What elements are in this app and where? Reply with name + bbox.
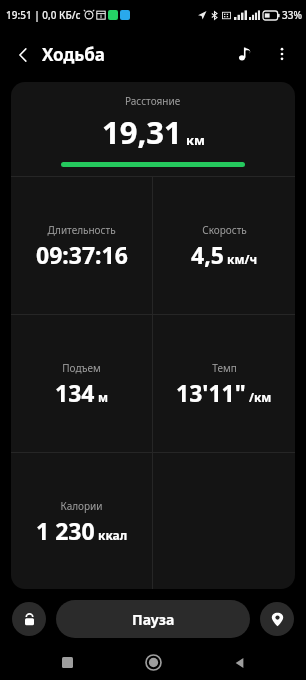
staticText: 19:51 | 0,0 КБ/c (6, 8, 81, 22)
staticText: ккал (98, 527, 128, 543)
button[interactable]: Recents (47, 645, 87, 680)
button[interactable]: Подъем (11, 315, 152, 452)
button[interactable]: More options (264, 36, 300, 72)
staticText: 19,31 (102, 111, 182, 153)
staticText: Длительность (47, 223, 116, 237)
staticText: Расстояние (125, 94, 181, 108)
button[interactable]: Пауза (56, 600, 250, 638)
button[interactable]: Темп (153, 315, 295, 452)
button[interactable]: Music (228, 36, 264, 72)
button[interactable]: Lock (12, 602, 46, 636)
button[interactable]: Калории (11, 453, 152, 589)
other: Back (14, 46, 32, 64)
staticText: Скорость (202, 223, 247, 237)
staticText: Пауза (132, 610, 175, 629)
staticText: 4,5 (191, 239, 224, 270)
button[interactable]: Back (8, 37, 112, 72)
staticText: 1 230 (36, 515, 95, 546)
staticText: Подъем (62, 361, 101, 375)
staticText: 134 (55, 377, 95, 408)
button[interactable]: Home (133, 645, 173, 680)
staticText: км (186, 131, 205, 149)
staticText: км/ч (227, 251, 258, 267)
staticText: м (98, 389, 109, 405)
staticText: 09:37:16 (36, 239, 128, 270)
button[interactable]: Расстояние (11, 82, 295, 176)
button[interactable]: Location (260, 602, 294, 636)
button[interactable]: Скорость (153, 177, 295, 314)
staticText: 13'11" (176, 377, 246, 408)
button[interactable]: Длительность (11, 177, 152, 314)
staticText: /км (249, 389, 272, 405)
staticText: 33% (282, 8, 302, 22)
button[interactable]: Back (220, 645, 260, 680)
staticText: Темп (212, 361, 237, 375)
staticText: Ходьба (42, 43, 106, 66)
staticText: Калории (60, 499, 103, 513)
